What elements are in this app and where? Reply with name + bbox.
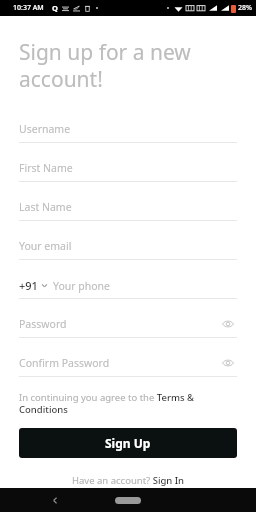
button[interactable]: Back bbox=[44, 489, 66, 511]
staticText: First Name bbox=[19, 161, 73, 175]
button[interactable]: Sign Up bbox=[19, 428, 237, 458]
staticText: Username bbox=[19, 122, 71, 136]
button[interactable]: Have an account? Sign In bbox=[72, 474, 185, 487]
staticText: Q bbox=[52, 3, 58, 13]
staticText: +91 bbox=[19, 278, 38, 293]
staticText: In continuing you agree to the Terms & C… bbox=[19, 391, 237, 416]
staticText: Have an account? Sign In bbox=[72, 474, 185, 487]
staticText: Sign up for a new account! bbox=[19, 38, 237, 93]
button[interactable]: Home bbox=[113, 493, 143, 507]
staticText: Sign Up bbox=[105, 435, 151, 451]
staticText: Confirm Password bbox=[19, 356, 110, 370]
button[interactable]: Password bbox=[19, 311, 237, 337]
button[interactable]: Show password bbox=[219, 354, 237, 372]
staticText: Last Name bbox=[19, 200, 72, 214]
staticText: Password bbox=[19, 317, 67, 331]
button[interactable]: Show password bbox=[219, 315, 237, 333]
staticText: Your email bbox=[19, 239, 72, 253]
button[interactable]: +91 bbox=[19, 272, 237, 298]
button[interactable]: Username bbox=[19, 116, 237, 142]
staticText: 10:37 AM bbox=[13, 3, 44, 13]
staticText: Your phone bbox=[53, 279, 111, 293]
button[interactable]: Confirm Password bbox=[19, 350, 237, 376]
button[interactable]: First Name bbox=[19, 155, 237, 181]
staticText: 28% bbox=[238, 3, 252, 13]
button[interactable]: In continuing you agree to the Terms & C… bbox=[19, 391, 237, 416]
button[interactable]: Last Name bbox=[19, 194, 237, 220]
button[interactable]: Your email bbox=[19, 233, 237, 259]
